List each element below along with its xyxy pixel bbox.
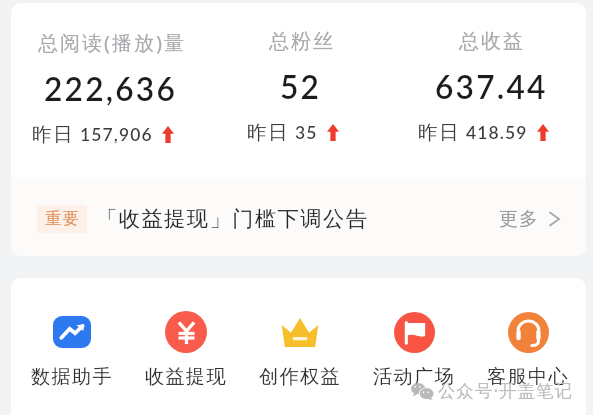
staticText: 157,906 [80, 124, 153, 145]
button[interactable]: 创作权益 [243, 311, 357, 389]
staticText: 创作权益 [259, 365, 341, 389]
button[interactable]: 数据助手 [15, 311, 129, 389]
staticText: 637.44 [435, 68, 548, 106]
staticText: 重要 [45, 209, 79, 229]
staticText: 35 [295, 122, 318, 143]
staticText: 52 [280, 68, 322, 106]
staticText: 公众号·开盖笔记 [438, 379, 574, 403]
other: 数据助手 [53, 316, 91, 348]
other: 收益提现 [165, 311, 207, 353]
staticText: 总粉丝 [268, 29, 334, 54]
staticText: 昨日 [418, 120, 460, 145]
staticText: 昨日 [32, 122, 74, 147]
button[interactable]: 客服中心 [471, 311, 585, 389]
button[interactable]: 活动广场 [357, 311, 471, 389]
staticText: 昨日 [247, 120, 289, 145]
staticText: 总阅读(播放)量 [37, 29, 185, 56]
staticText: 收益提现 [145, 365, 227, 389]
button[interactable]: 重要 [11, 179, 586, 256]
staticText: 数据助手 [31, 365, 113, 389]
staticText: 客服中心 [487, 365, 569, 389]
other: 活动广场 [394, 312, 435, 353]
staticText: 418.59 [466, 122, 528, 143]
button[interactable]: 收益提现 [129, 311, 243, 389]
staticText: 「收益提现」门槛下调公告 [96, 205, 369, 232]
staticText: 222,636 [44, 70, 177, 108]
other: 客服中心 [508, 312, 549, 353]
staticText: 总收益 [458, 29, 524, 54]
staticText: 活动广场 [373, 365, 455, 389]
staticText: 更多 [499, 207, 539, 231]
other: 创作权益 [281, 311, 319, 353]
